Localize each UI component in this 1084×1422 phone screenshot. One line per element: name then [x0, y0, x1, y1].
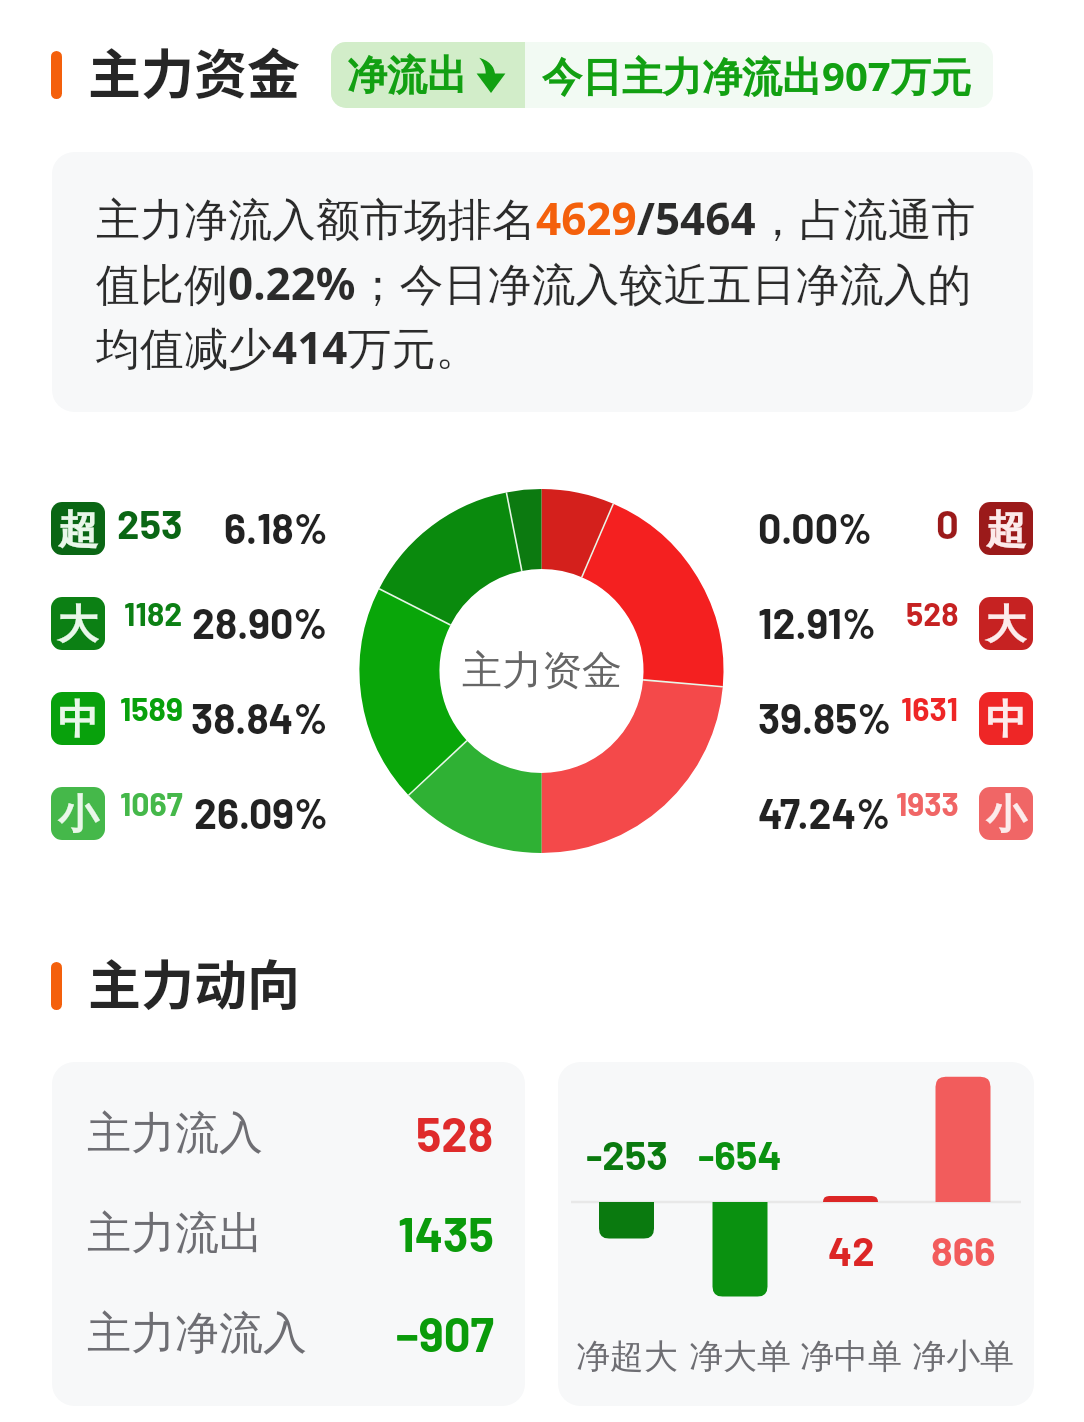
staticText: -253: [586, 1130, 668, 1178]
staticText: 今日主力净流出907万元: [542, 48, 971, 103]
staticText: 1182: [124, 594, 183, 632]
staticText: 净超大: [576, 1335, 678, 1378]
staticText: 大: [986, 599, 1026, 649]
staticText: 1631: [901, 689, 959, 727]
staticText: 1435: [398, 1205, 494, 1261]
button[interactable]: 小: [979, 787, 1033, 840]
staticText: 26.09%: [194, 788, 328, 837]
button[interactable]: 大: [979, 597, 1033, 650]
staticText: 12.91%: [758, 598, 876, 647]
staticText: 净大单: [689, 1335, 791, 1378]
staticText: 39.85%: [758, 693, 892, 742]
staticText: 1589: [120, 689, 183, 727]
staticText: 主力流出: [87, 1206, 263, 1261]
staticText: 小: [58, 789, 98, 839]
staticText: 大: [58, 599, 98, 649]
staticText: 主力资金: [88, 33, 300, 110]
staticText: 主力资金: [462, 645, 622, 695]
staticText: 528: [906, 594, 959, 632]
staticText: −907: [396, 1305, 494, 1361]
staticText: 中: [58, 694, 98, 744]
staticText: 1933: [896, 784, 959, 822]
staticText: 38.84%: [191, 693, 328, 742]
staticText: 超: [58, 504, 98, 554]
staticText: 净小单: [912, 1335, 1014, 1378]
staticText: 小: [986, 789, 1026, 839]
staticText: 42: [828, 1226, 875, 1274]
staticText: 866: [931, 1226, 996, 1274]
staticText: 中: [986, 694, 1026, 744]
staticText: 0.00%: [758, 503, 872, 552]
staticText: 超: [986, 504, 1026, 554]
staticText: 主力流入: [87, 1106, 263, 1161]
button[interactable]: 净流出: [331, 42, 993, 108]
staticText: 净中单: [800, 1335, 902, 1378]
button[interactable]: 中: [979, 692, 1033, 745]
button[interactable]: 中: [51, 692, 105, 745]
staticText: 1067: [120, 784, 183, 822]
staticText: 528: [416, 1105, 494, 1161]
staticText: 0: [936, 499, 959, 547]
button[interactable]: 超: [979, 502, 1033, 555]
button[interactable]: 超: [51, 502, 105, 555]
staticText: 主力净流入额市场排名4629/5464，占流通市值比例0.22%；今日净流入较近…: [96, 188, 1012, 377]
staticText: 主力净流入: [87, 1306, 307, 1361]
staticText: 28.90%: [192, 598, 328, 647]
button[interactable]: 小: [51, 787, 105, 840]
staticText: 253: [117, 499, 183, 547]
button[interactable]: 大: [51, 597, 105, 650]
staticText: 净流出: [347, 50, 467, 100]
staticText: 主力动向: [88, 944, 300, 1021]
staticText: 6.18%: [224, 503, 328, 552]
staticText: 47.24%: [758, 788, 891, 837]
staticText: -654: [698, 1130, 782, 1178]
